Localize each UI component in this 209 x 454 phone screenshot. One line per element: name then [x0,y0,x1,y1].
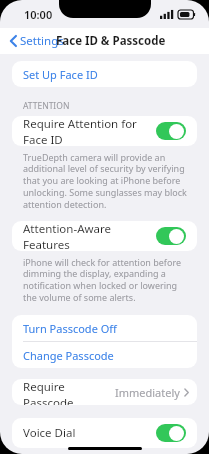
staticText: Immediately [115,385,180,400]
staticText: Attention-Aware Features [23,221,156,251]
staticText: Set Up Face ID [23,67,98,82]
staticText: Require Attention for Face ID [23,116,156,146]
button[interactable]: Change Passcode [12,342,197,368]
button[interactable]: Toggle on [156,227,186,245]
staticText: iPhone will check for attention before d… [23,256,189,304]
button[interactable]: Settings [8,31,66,51]
button[interactable]: Attention-Aware Features [12,221,197,251]
staticText: Change Passcode [23,348,114,363]
staticText: Voice Dial [23,425,156,441]
staticText: Settings [20,33,64,49]
staticText: Turn Passcode Off [23,321,117,336]
button[interactable]: Turn Passcode Off [12,315,197,341]
button[interactable]: Set Up Face ID [12,61,197,87]
button[interactable]: Require Attention for Face ID [12,116,197,146]
staticText: ATTENTION [23,100,70,112]
button[interactable]: Toggle on [156,424,186,442]
staticText: 10:00 [24,7,53,22]
button[interactable]: Toggle on [156,122,186,140]
staticText: TrueDepth camera will provide an additio… [23,151,189,211]
button[interactable]: Require Passcode [12,379,197,405]
button[interactable]: Voice Dial [12,418,197,448]
staticText: Face ID & Passcode [56,33,166,49]
staticText: Require Passcode [23,379,115,405]
